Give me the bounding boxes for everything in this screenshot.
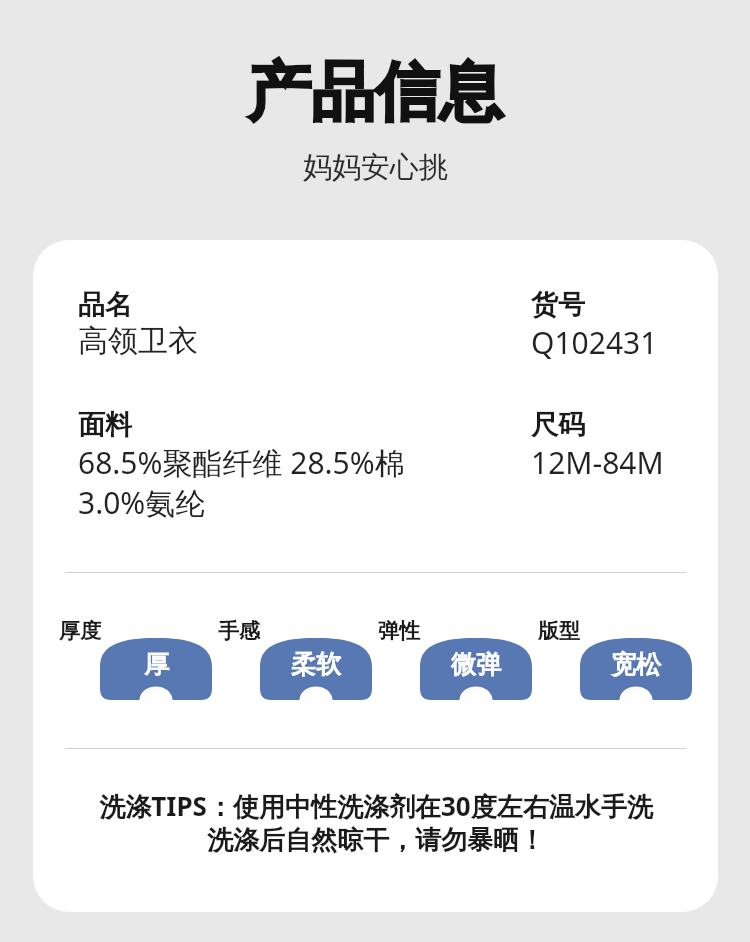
staticText: 厚度 — [59, 618, 101, 644]
staticText: 面料 — [78, 408, 132, 442]
staticText: 高领卫衣 — [78, 322, 198, 360]
button[interactable]: 品名 — [78, 288, 198, 360]
staticText: 柔软 — [291, 649, 341, 680]
staticText: 尺码 — [531, 408, 585, 442]
button[interactable]: 弹性 微弹 — [378, 618, 532, 700]
staticText: 妈妈安心挑 — [303, 149, 448, 186]
staticText: 手感 — [218, 618, 260, 644]
staticText: 版型 — [538, 618, 580, 644]
button[interactable]: 版型 宽松 — [538, 618, 692, 700]
staticText: 12M-84M — [531, 442, 664, 483]
staticText: Q102431 — [531, 322, 658, 363]
button[interactable]: 货号 — [531, 288, 658, 363]
staticText: 产品信息 — [247, 52, 503, 133]
staticText: 68.5%聚酯纤维 28.5%棉 3.0%氨纶 — [78, 442, 405, 523]
staticText: 弹性 — [378, 618, 420, 644]
staticText: 厚 — [144, 649, 169, 680]
button[interactable]: 手感 柔软 — [218, 618, 372, 700]
button[interactable]: 厚度 厚 — [59, 618, 212, 700]
button[interactable]: 面料 — [78, 408, 405, 523]
staticText: 货号 — [531, 288, 585, 322]
staticText: 品名 — [78, 288, 132, 322]
staticText: 微弹 — [451, 649, 501, 680]
staticText: 洗涤TIPS：使用中性洗涤剂在30度左右温水手洗 — [99, 788, 653, 824]
button[interactable]: 尺码 — [531, 408, 664, 483]
staticText: 洗涤后自然晾干，请勿暴晒！ — [207, 824, 545, 857]
staticText: 宽松 — [611, 649, 661, 680]
